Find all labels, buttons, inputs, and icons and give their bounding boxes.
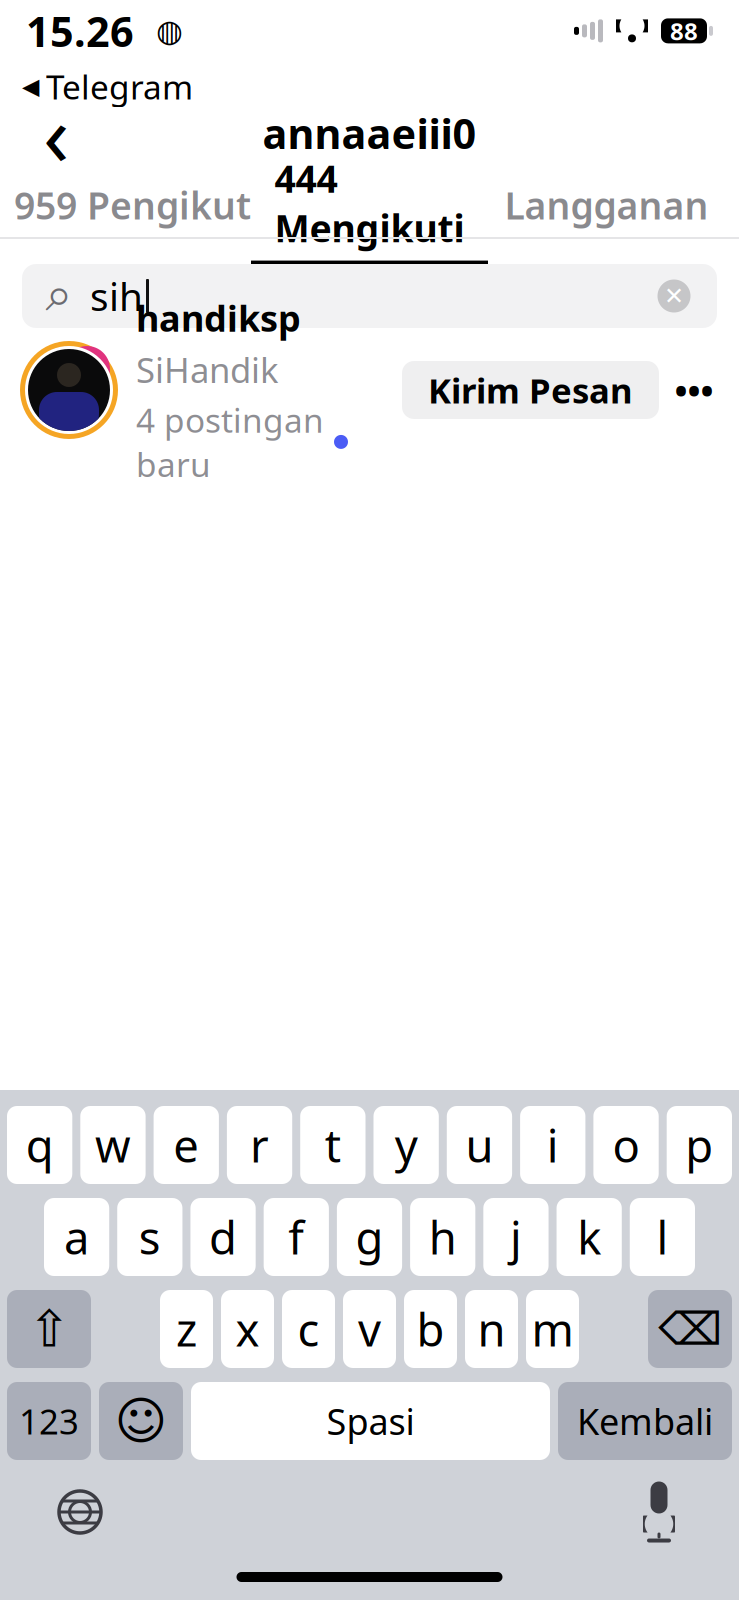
button[interactable]: Spasi — [191, 1382, 550, 1460]
button[interactable]: 959 Pengikut — [14, 173, 251, 237]
staticText: Kembali — [577, 1397, 713, 1445]
staticText: a — [64, 1207, 89, 1267]
staticText: r — [250, 1115, 269, 1175]
staticText: ✕ — [664, 282, 684, 310]
button[interactable]: b — [404, 1290, 457, 1368]
staticText: v — [358, 1299, 381, 1359]
staticText: e — [173, 1115, 199, 1175]
button[interactable]: Dictation — [617, 1476, 701, 1548]
button[interactable]: Delete — [648, 1290, 732, 1368]
button[interactable]: 123 — [7, 1382, 91, 1460]
button[interactable]: k — [557, 1198, 622, 1276]
staticText: c — [297, 1299, 319, 1359]
button[interactable]: f — [264, 1198, 329, 1276]
button[interactable]: Langganan — [488, 173, 725, 237]
staticText: b — [416, 1299, 444, 1359]
staticText: ☺ — [114, 1392, 167, 1450]
button[interactable]: Kembali — [558, 1382, 732, 1460]
button[interactable]: p — [667, 1106, 732, 1184]
button[interactable]: c — [282, 1290, 335, 1368]
staticText: d — [209, 1207, 237, 1267]
staticText: k — [577, 1207, 601, 1267]
button[interactable]: q — [7, 1106, 72, 1184]
button[interactable]: a — [44, 1198, 109, 1276]
staticText: z — [176, 1299, 197, 1359]
staticText: Kirim Pesan — [428, 367, 633, 413]
staticText: n — [477, 1299, 505, 1359]
staticText: handiksp — [136, 294, 301, 342]
staticText: i — [547, 1115, 559, 1175]
button[interactable]: l — [630, 1198, 695, 1276]
staticText: ⌫ — [658, 1303, 722, 1355]
staticText: m — [531, 1299, 573, 1359]
staticText: Langganan — [504, 180, 708, 230]
button[interactable]: u — [447, 1106, 512, 1184]
button[interactable]: e — [154, 1106, 219, 1184]
button[interactable]: z — [160, 1290, 213, 1368]
staticText: ⇧ — [28, 1300, 70, 1358]
button[interactable]: d — [190, 1198, 256, 1276]
button[interactable]: v — [343, 1290, 396, 1368]
button[interactable]: handiksp — [0, 328, 739, 442]
staticText: ••• — [674, 367, 713, 413]
button[interactable]: Shift — [7, 1290, 91, 1368]
staticText: SiHandik — [136, 347, 279, 393]
staticText: j — [510, 1207, 522, 1267]
staticText: t — [325, 1115, 341, 1175]
staticText: 959 Pengikut — [14, 180, 251, 230]
button[interactable]: m — [526, 1290, 579, 1368]
staticText: p — [685, 1115, 713, 1175]
staticText: 15.26 — [26, 3, 134, 58]
button[interactable]: Emoji — [99, 1382, 183, 1460]
button[interactable]: Kirim Pesan — [402, 361, 659, 419]
staticText: x — [235, 1299, 259, 1359]
staticText: 123 — [19, 1398, 79, 1444]
staticText: l — [656, 1207, 668, 1267]
staticText: o — [613, 1115, 640, 1175]
staticText: 4 postingan baru — [136, 398, 324, 486]
button[interactable]: s — [117, 1198, 182, 1276]
button[interactable]: More options — [659, 361, 729, 419]
button[interactable]: g — [337, 1198, 402, 1276]
button[interactable]: i — [520, 1106, 585, 1184]
staticText: sih — [90, 270, 143, 322]
button[interactable]: y — [373, 1106, 439, 1184]
button[interactable]: t — [300, 1106, 365, 1184]
staticText: ◀ — [22, 74, 39, 99]
staticText: ◍ — [134, 13, 183, 48]
staticText: h — [429, 1207, 457, 1267]
staticText: annaaeiii0 — [262, 106, 476, 160]
button[interactable]: 444 Mengikuti — [251, 173, 488, 237]
staticText: Telegram — [46, 64, 193, 109]
staticText: g — [355, 1207, 383, 1267]
staticText: 444 Mengikuti — [274, 153, 464, 253]
staticText: u — [465, 1115, 493, 1175]
button[interactable]: n — [465, 1290, 518, 1368]
staticText: y — [395, 1115, 418, 1175]
button[interactable]: Next keyboard — [38, 1476, 122, 1548]
button[interactable]: o — [593, 1106, 659, 1184]
staticText: ‹ — [43, 76, 69, 190]
button[interactable]: Clear text — [651, 273, 697, 319]
staticText: f — [288, 1207, 304, 1267]
button[interactable]: Back — [20, 97, 92, 169]
button[interactable]: h — [410, 1198, 475, 1276]
button[interactable]: r — [227, 1106, 292, 1184]
button[interactable]: x — [221, 1290, 274, 1368]
staticText: ⌕ — [45, 273, 72, 319]
staticText: s — [139, 1207, 161, 1267]
staticText: w — [95, 1115, 131, 1175]
staticText: q — [26, 1115, 54, 1175]
button[interactable]: w — [80, 1106, 146, 1184]
staticText: Spasi — [326, 1397, 414, 1445]
staticText: 88 — [670, 15, 698, 47]
button[interactable]: j — [483, 1198, 548, 1276]
